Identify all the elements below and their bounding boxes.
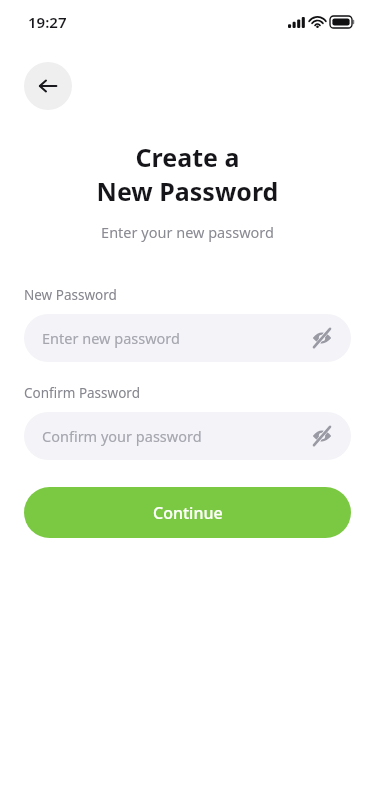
- staticText: Enter new password: [42, 328, 309, 348]
- button[interactable]: Enter new password: [24, 314, 351, 362]
- staticText: 19:27: [28, 12, 67, 32]
- staticText: New Password: [24, 286, 117, 304]
- staticText: Confirm your password: [42, 426, 309, 446]
- staticText: Confirm Password: [24, 384, 140, 402]
- button[interactable]: Show password: [309, 325, 335, 351]
- button[interactable]: Confirm your password: [24, 412, 351, 460]
- button[interactable]: Show password: [309, 423, 335, 449]
- button[interactable]: Continue: [24, 487, 351, 538]
- staticText: New Password: [0, 174, 375, 208]
- staticText: Enter your new password: [0, 222, 375, 242]
- button[interactable]: Back: [24, 62, 72, 110]
- staticText: Continue: [153, 502, 223, 524]
- staticText: Create a: [0, 140, 375, 174]
